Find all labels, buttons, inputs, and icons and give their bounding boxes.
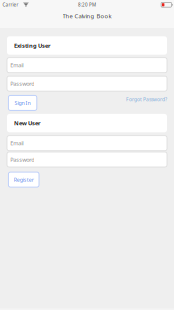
staticText: Password [10, 80, 34, 87]
staticText: 8:20 PM [78, 2, 96, 8]
staticText: Existing User [14, 42, 51, 49]
button[interactable]: Password [7, 76, 167, 91]
staticText: Carrier [2, 2, 18, 8]
button[interactable]: Register [8, 172, 39, 187]
staticText: Register [14, 176, 34, 183]
staticText: Sign In [15, 99, 31, 107]
button[interactable]: Email [7, 58, 167, 73]
button[interactable]: Email [7, 136, 167, 151]
button[interactable]: Password [7, 152, 167, 167]
button[interactable]: Forgot Password? [126, 96, 167, 103]
staticText: Email [10, 139, 23, 147]
staticText: Password [10, 156, 34, 163]
staticText: The Calving Book [62, 12, 111, 20]
button[interactable]: Sign In [8, 95, 37, 110]
staticText: New User [14, 119, 41, 127]
staticText: Email [10, 61, 23, 69]
staticText: Forgot Password? [126, 96, 167, 103]
